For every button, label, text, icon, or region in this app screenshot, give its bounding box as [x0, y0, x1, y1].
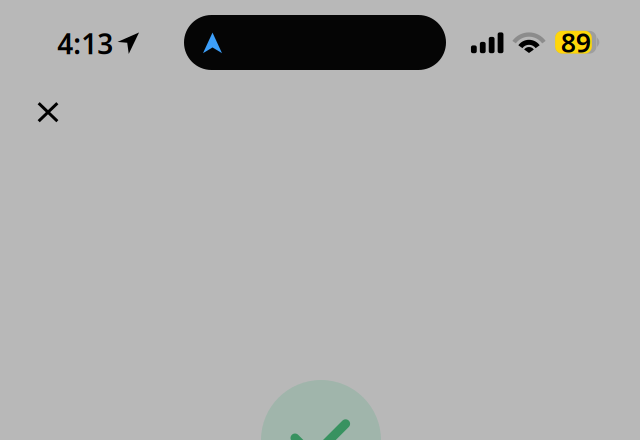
button[interactable]: Close: [24, 88, 72, 136]
staticText: 89: [561, 24, 591, 60]
staticText: 4:13: [57, 25, 113, 62]
